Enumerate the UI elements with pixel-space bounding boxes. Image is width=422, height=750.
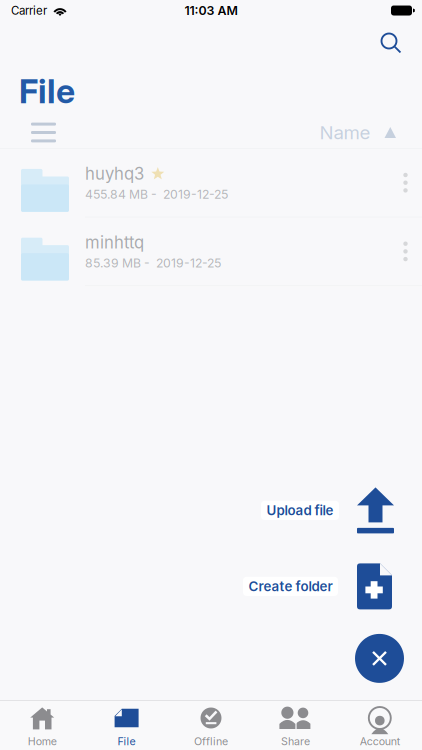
button[interactable]: File: [84, 701, 169, 750]
button[interactable]: Offline: [169, 701, 253, 750]
staticText: File: [118, 735, 136, 748]
button[interactable]: huyhq3: [0, 149, 422, 217]
staticText: File: [19, 71, 75, 111]
staticText: huyhq3: [85, 164, 144, 184]
staticText: 85.39 MB - 2019-12-25: [85, 256, 221, 270]
button[interactable]: Upload file: [357, 487, 394, 533]
staticText: 455.84 MB - 2019-12-25: [85, 187, 228, 202]
button[interactable]: Create folder: [357, 563, 392, 609]
button[interactable]: Home: [0, 701, 84, 750]
button[interactable]: List options: [25, 116, 62, 149]
staticText: Create folder: [248, 578, 332, 594]
button[interactable]: Close menu: [355, 634, 404, 683]
staticText: Upload file: [266, 502, 333, 518]
staticText: Carrier: [11, 4, 47, 17]
button[interactable]: minhttq: [0, 217, 422, 285]
button[interactable]: Share: [253, 701, 338, 750]
staticText: 11:03 AM: [184, 3, 237, 18]
button[interactable]: Account: [338, 701, 422, 750]
staticText: Account: [360, 735, 400, 748]
staticText: Offline: [194, 735, 228, 748]
button[interactable]: Search: [368, 22, 410, 60]
button[interactable]: Create folder: [243, 577, 338, 596]
staticText: minhttq: [85, 232, 144, 253]
staticText: Home: [28, 735, 57, 748]
button[interactable]: Name: [319, 115, 396, 150]
staticText: Share: [281, 735, 310, 748]
staticText: Name: [319, 121, 370, 144]
button[interactable]: Upload file: [261, 501, 339, 520]
